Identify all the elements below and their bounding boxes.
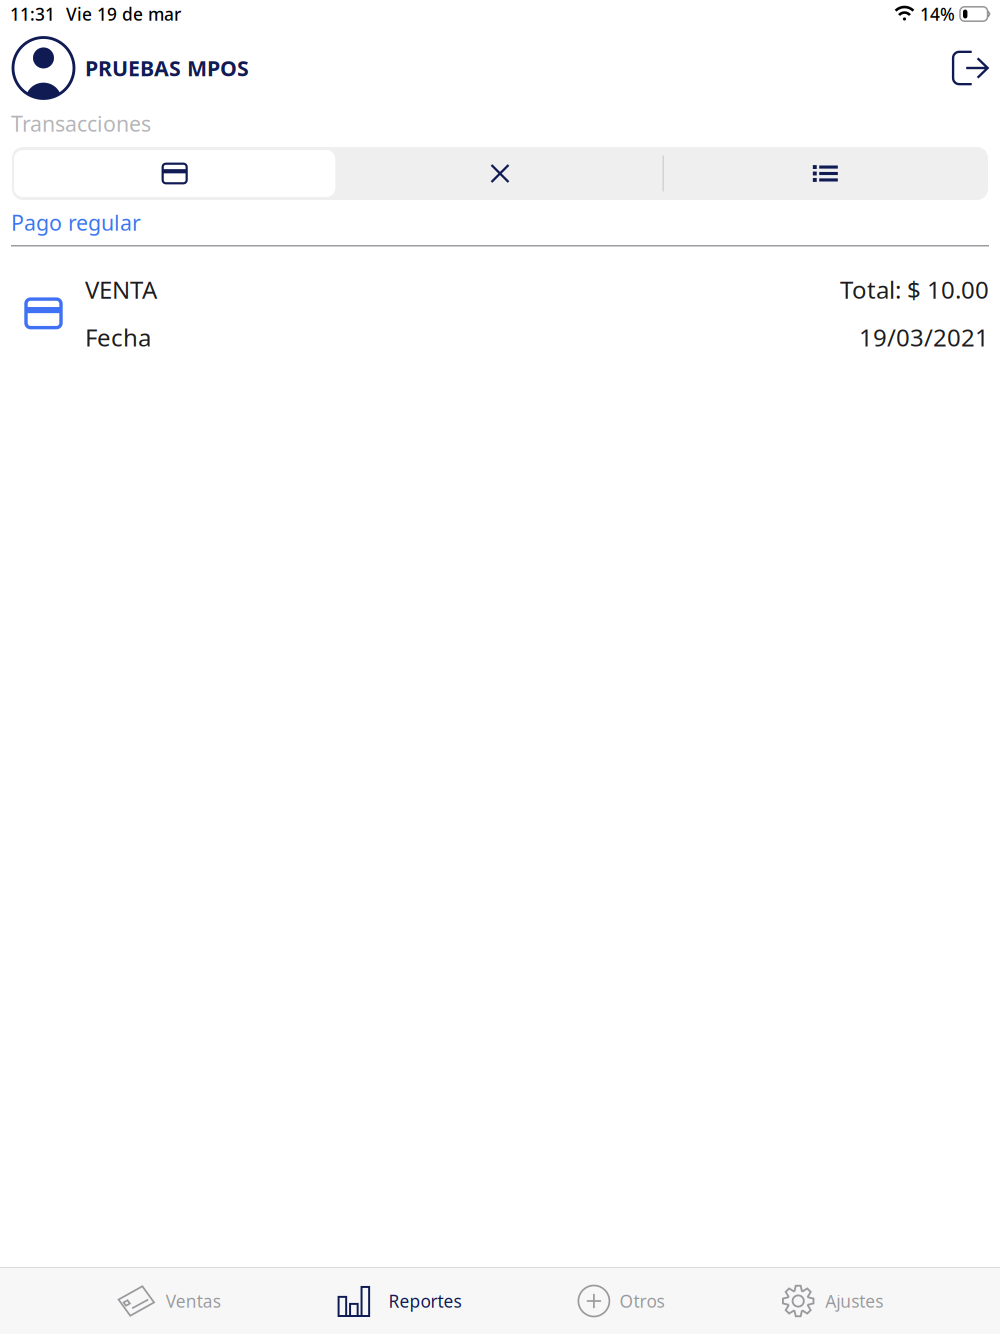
button[interactable]: VENTA xyxy=(0,246,1000,353)
button[interactable]: PRUEBAS MPOS xyxy=(0,37,249,98)
staticText: 11:31 xyxy=(10,2,55,25)
staticText: Ventas xyxy=(166,1289,221,1312)
staticText: Total: $ 10.00 xyxy=(840,273,989,305)
staticText: Otros xyxy=(619,1289,664,1312)
button[interactable]: Ventas xyxy=(117,1268,221,1334)
staticText: 19/03/2021 xyxy=(859,321,989,353)
staticText: VENTA xyxy=(85,273,157,305)
staticText: 14% xyxy=(920,2,955,25)
staticText: Transacciones xyxy=(11,109,151,138)
staticText: Fecha xyxy=(85,321,151,353)
staticText: Reportes xyxy=(389,1289,462,1312)
button[interactable]: Todas xyxy=(663,147,988,200)
button[interactable]: Cerrar sesión xyxy=(951,49,1000,87)
staticText: Ajustes xyxy=(825,1289,883,1312)
staticText: PRUEBAS MPOS xyxy=(85,54,249,82)
staticText: Pago regular xyxy=(11,208,141,237)
button[interactable]: Reportes xyxy=(338,1268,462,1334)
button[interactable]: Otros xyxy=(578,1268,664,1334)
button[interactable]: Pagos xyxy=(12,150,337,197)
staticText: Vie 19 de mar xyxy=(66,2,181,25)
button[interactable]: Cancelaciones xyxy=(337,147,663,200)
button[interactable]: Ajustes xyxy=(781,1268,883,1334)
